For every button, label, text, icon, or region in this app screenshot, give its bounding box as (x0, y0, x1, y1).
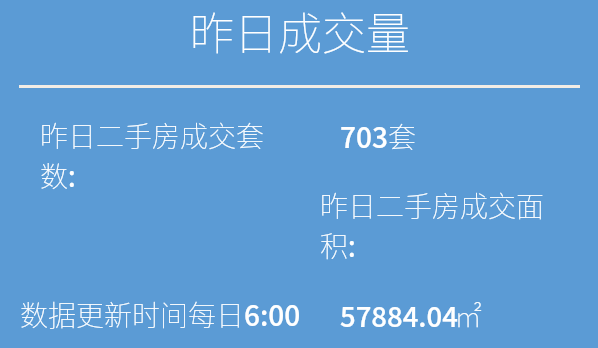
staticText: 昨日二手房成交面积: (320, 185, 552, 265)
staticText: 昨日成交量 (190, 0, 410, 63)
staticText: 703套 (340, 116, 416, 157)
staticText: 昨日二手房成交套数: (40, 115, 272, 195)
staticText: 数据更新时间每日6:00 (20, 294, 301, 335)
staticText: ㎡ (454, 295, 483, 336)
staticText: 57884.04 (340, 295, 458, 335)
